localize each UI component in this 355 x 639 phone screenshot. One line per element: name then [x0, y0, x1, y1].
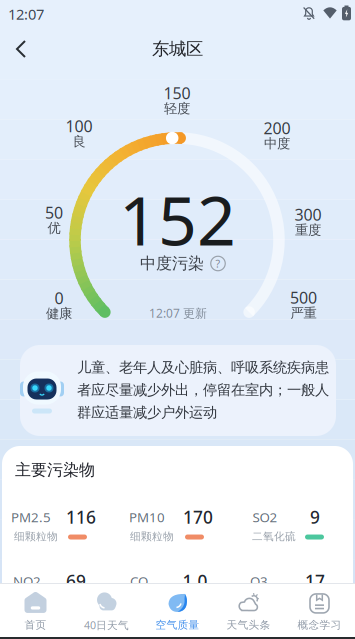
- button[interactable]: Back: [7, 38, 41, 60]
- staticText: 152: [119, 174, 236, 264]
- staticText: 300: [294, 204, 321, 225]
- staticText: CO: [130, 572, 148, 590]
- staticText: SO2: [252, 508, 277, 526]
- staticText: PM2.5: [11, 508, 51, 526]
- button[interactable]: 40日天气: [71, 585, 142, 637]
- staticText: 轻度: [164, 100, 190, 117]
- staticText: NO2: [13, 572, 41, 590]
- staticText: 40日天气: [84, 618, 129, 632]
- staticText: 东城区: [152, 38, 203, 60]
- staticText: 500: [290, 287, 317, 308]
- staticText: 中度污染: [140, 254, 204, 273]
- staticText: 主要污染物: [15, 460, 95, 480]
- staticText: 空气质量: [155, 618, 199, 631]
- staticText: 100: [65, 115, 92, 137]
- button[interactable]: 空气质量: [142, 585, 213, 637]
- staticText: 中度: [264, 135, 290, 152]
- staticText: 12:07 更新: [149, 305, 207, 321]
- staticText: ?: [215, 256, 220, 271]
- staticText: 1.0: [182, 569, 207, 592]
- staticText: 重度: [295, 222, 321, 238]
- staticText: 严重: [290, 305, 316, 321]
- staticText: 细颗粒物: [130, 530, 174, 543]
- button[interactable]: 概念学习: [284, 585, 355, 637]
- staticText: O3: [250, 572, 268, 590]
- staticText: 优: [47, 220, 60, 236]
- staticText: 首页: [24, 618, 46, 631]
- staticText: PM10: [129, 508, 165, 526]
- staticText: 9: [310, 505, 320, 528]
- staticText: 儿童、老年人及心脏病、呼吸系统疾病患: [77, 358, 329, 376]
- button[interactable]: AQI info: [210, 255, 226, 271]
- staticText: 150: [163, 82, 190, 104]
- staticText: 者应尽量减少外出，停留在室内；一般人: [77, 381, 329, 399]
- staticText: 二氧化硫: [252, 530, 296, 543]
- staticText: 200: [263, 117, 290, 139]
- staticText: 69: [66, 569, 86, 592]
- staticText: 良: [72, 133, 85, 150]
- staticText: 12:07: [8, 4, 44, 24]
- staticText: 健康: [46, 305, 72, 322]
- staticText: 概念学习: [297, 618, 341, 631]
- button[interactable]: 天气头条: [213, 585, 284, 637]
- staticText: 17: [305, 569, 325, 592]
- staticText: 细颗粒物: [14, 530, 58, 543]
- staticText: 群应适量减少户外运动: [77, 403, 217, 421]
- staticText: 天气头条: [226, 618, 270, 631]
- staticText: 170: [183, 505, 213, 528]
- staticText: 50: [45, 202, 63, 223]
- staticText: 116: [66, 505, 96, 528]
- staticText: 0: [54, 287, 63, 309]
- button[interactable]: 首页: [0, 585, 71, 637]
